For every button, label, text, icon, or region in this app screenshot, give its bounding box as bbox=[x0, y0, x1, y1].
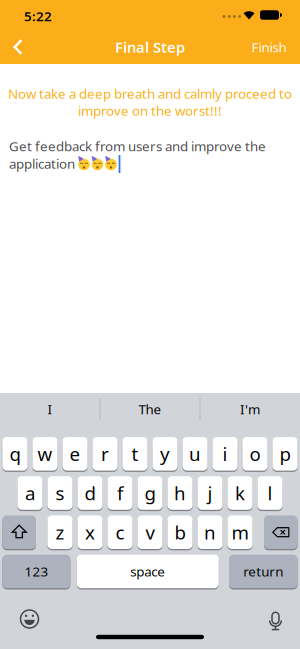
staticText: improve on the worst!!! bbox=[78, 102, 222, 119]
button[interactable]: r bbox=[92, 437, 118, 472]
staticText: c bbox=[115, 520, 124, 545]
staticText: Get feedback from users and improve the bbox=[9, 137, 266, 155]
button[interactable]: i bbox=[212, 437, 238, 472]
staticText: u bbox=[189, 441, 201, 466]
staticText: m bbox=[231, 520, 248, 545]
button[interactable]: t bbox=[122, 437, 148, 472]
staticText: r bbox=[101, 441, 109, 466]
staticText: l bbox=[267, 481, 272, 505]
button[interactable]: e bbox=[62, 437, 88, 472]
staticText: I'm bbox=[240, 400, 260, 418]
staticText: o bbox=[249, 441, 260, 466]
staticText: p bbox=[279, 441, 290, 466]
staticText: i bbox=[222, 441, 227, 466]
button[interactable]: m bbox=[227, 515, 253, 550]
button[interactable]: b bbox=[167, 515, 193, 550]
staticText: 123 bbox=[24, 562, 48, 580]
staticText: h bbox=[174, 481, 186, 505]
staticText: The bbox=[138, 400, 161, 418]
staticText: n bbox=[204, 520, 216, 545]
button[interactable]: space bbox=[77, 555, 219, 589]
staticText: Now take a deep breath and calmly procee… bbox=[8, 85, 292, 102]
button[interactable] bbox=[264, 515, 298, 550]
staticText: a bbox=[25, 481, 35, 505]
button[interactable]: k bbox=[227, 476, 253, 511]
button[interactable]: g bbox=[137, 476, 163, 511]
staticText: q bbox=[9, 441, 20, 466]
button[interactable]: h bbox=[167, 476, 193, 511]
button[interactable]: The bbox=[101, 394, 199, 424]
staticText: I bbox=[47, 400, 52, 418]
staticText: x bbox=[85, 520, 95, 545]
staticText: d bbox=[84, 481, 95, 505]
button[interactable]: n bbox=[197, 515, 223, 550]
staticText: application bbox=[9, 155, 75, 172]
button[interactable]: v bbox=[137, 515, 163, 550]
staticText: j bbox=[207, 481, 212, 505]
staticText: v bbox=[145, 520, 154, 545]
button[interactable]: s bbox=[47, 476, 73, 511]
staticText: f bbox=[117, 481, 123, 505]
staticText: space bbox=[130, 562, 165, 580]
button[interactable]: y bbox=[152, 437, 178, 472]
button[interactable]: l bbox=[257, 476, 283, 511]
button[interactable] bbox=[3, 32, 33, 62]
staticText: g bbox=[144, 481, 155, 505]
staticText: z bbox=[55, 520, 64, 545]
staticText: Finish bbox=[251, 38, 286, 56]
button[interactable] bbox=[263, 605, 287, 635]
staticText: 5:22 bbox=[24, 7, 52, 25]
button[interactable]: I'm bbox=[201, 394, 299, 424]
button[interactable]: p bbox=[272, 437, 298, 472]
staticText: s bbox=[55, 481, 64, 505]
button[interactable]: I bbox=[1, 394, 99, 424]
button[interactable]: 123 bbox=[2, 555, 70, 589]
button[interactable]: z bbox=[47, 515, 73, 550]
button[interactable]: u bbox=[182, 437, 208, 472]
button[interactable]: Finish bbox=[244, 32, 294, 62]
staticText: t bbox=[131, 441, 138, 466]
button[interactable]: j bbox=[197, 476, 223, 511]
button[interactable]: c bbox=[107, 515, 133, 550]
staticText: e bbox=[69, 441, 80, 466]
button[interactable]: q bbox=[2, 437, 28, 472]
button[interactable]: return bbox=[229, 555, 298, 589]
staticText: b bbox=[174, 520, 185, 545]
staticText: Final Step bbox=[115, 37, 185, 57]
button[interactable]: x bbox=[77, 515, 103, 550]
staticText: k bbox=[235, 481, 245, 505]
button[interactable]: w bbox=[32, 437, 58, 472]
button[interactable]: o bbox=[242, 437, 268, 472]
staticText: return bbox=[243, 562, 283, 580]
button[interactable]: f bbox=[107, 476, 133, 511]
staticText: w bbox=[37, 441, 52, 466]
staticText: y bbox=[160, 441, 170, 466]
button[interactable]: d bbox=[77, 476, 103, 511]
button[interactable]: a bbox=[17, 476, 43, 511]
button[interactable] bbox=[14, 604, 44, 634]
button[interactable] bbox=[2, 515, 36, 550]
